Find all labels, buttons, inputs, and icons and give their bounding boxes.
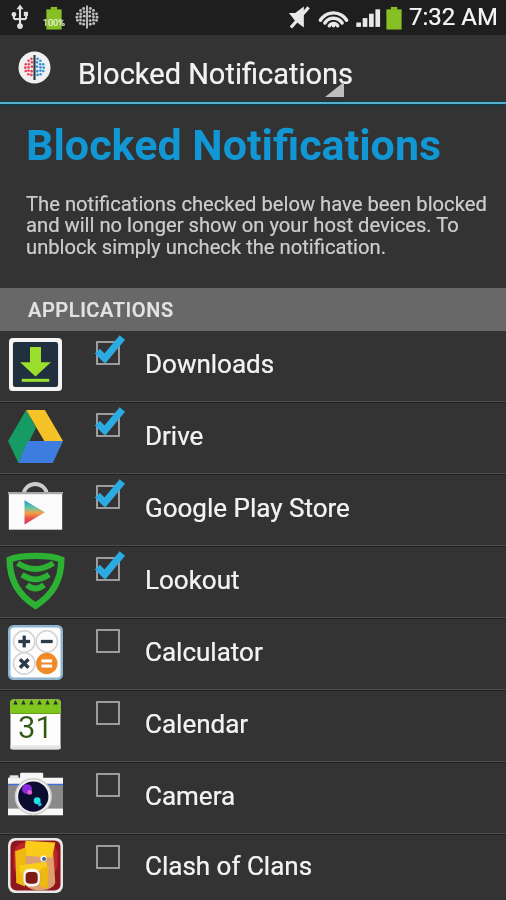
staticText: The notifications checked below have bee… [26, 192, 487, 259]
other: Toggle Google Play Store [96, 485, 119, 508]
staticText: Clash of Clans [145, 851, 313, 881]
other: Toggle Downloads [96, 341, 119, 364]
button[interactable]: Toggle Google Play Store [0, 475, 506, 545]
other: Expand [325, 82, 344, 97]
other: Toggle Calendar [96, 701, 119, 724]
other: Toggle Lookout [96, 557, 119, 580]
staticText: Drive [145, 421, 204, 451]
other: Toggle Calculator [96, 629, 119, 652]
staticText: Blocked Notifications [26, 120, 442, 170]
button[interactable]: Toggle Downloads [0, 331, 506, 401]
button[interactable]: 31 [0, 691, 506, 761]
staticText: 100% [43, 18, 65, 29]
button[interactable]: Toggle Calculator [0, 619, 506, 689]
staticText: APPLICATIONS [28, 298, 174, 321]
staticText: Downloads [145, 349, 275, 379]
staticText: Camera [145, 781, 236, 811]
staticText: 7:32 AM [409, 3, 498, 31]
other: Toggle Drive [96, 413, 119, 436]
staticText: Calculator [145, 637, 263, 667]
staticText: 31 [18, 709, 53, 745]
staticText: Blocked Notifications [78, 57, 354, 91]
staticText: Calendar [145, 709, 249, 739]
button[interactable]: Toggle Drive [0, 403, 506, 473]
button[interactable]: Blocked Notifications [0, 35, 506, 101]
other: Toggle Clash of Clans [96, 845, 119, 868]
button[interactable]: Toggle Camera [0, 763, 506, 833]
staticText: Lookout [145, 565, 240, 595]
other: Toggle Camera [96, 773, 119, 796]
button[interactable]: Toggle Clash of Clans [0, 835, 506, 900]
staticText: Google Play Store [145, 493, 350, 523]
button[interactable]: Toggle Lookout [0, 547, 506, 617]
